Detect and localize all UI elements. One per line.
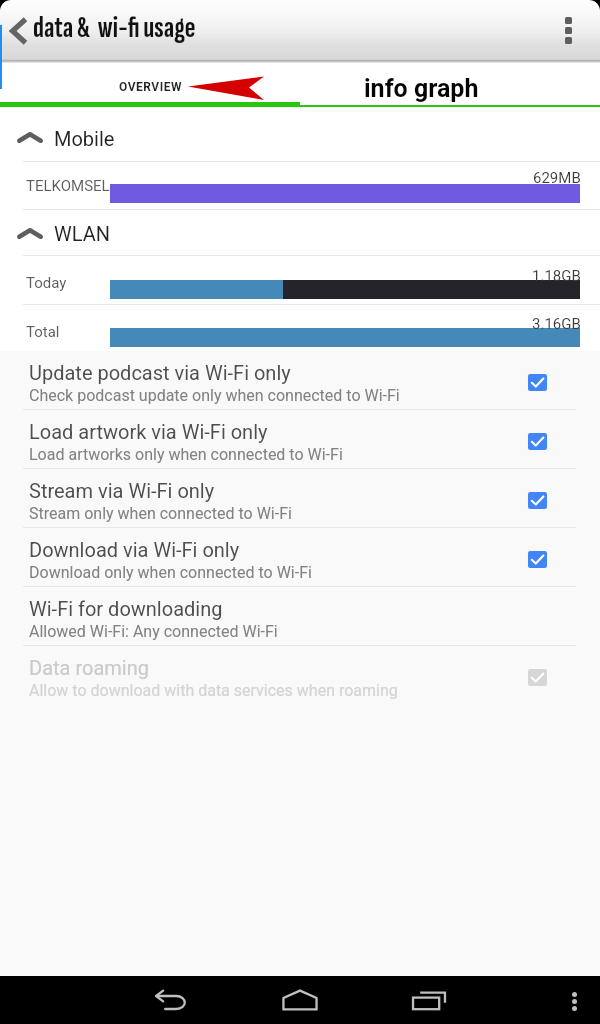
button[interactable]: Update podcast via Wi-Fi only [0,351,600,410]
staticText: Allow to download with data services whe… [29,681,398,700]
button[interactable]: Mobile [0,107,600,161]
staticText: Stream only when connected to Wi-Fi [29,504,292,523]
button[interactable]: OVERVIEW [0,63,300,107]
button[interactable]: Recent apps [399,976,459,1024]
staticText: 3.16GB [532,315,581,333]
button[interactable]: Download via Wi-Fi only [0,528,600,587]
staticText: Today [26,274,67,292]
button[interactable]: TELKOMSEL [0,162,600,209]
button[interactable]: Update podcast via Wi-Fi only [518,363,556,401]
staticText: Data roaming [29,656,149,679]
button[interactable]: Load artwork via Wi-Fi only [0,410,600,469]
button[interactable]: info graph [300,63,600,107]
staticText: OVERVIEW [119,80,182,94]
button[interactable]: Data roaming [0,646,600,705]
button[interactable]: Home [270,976,330,1024]
button[interactable]: More options [553,977,595,1024]
staticText: 1.18GB [532,267,581,285]
staticText: WLAN [54,222,111,245]
button[interactable]: Back [3,5,35,57]
staticText: Load artworks only when connected to Wi-… [29,445,343,464]
button[interactable]: Total [0,305,600,354]
button[interactable]: Load artwork via Wi-Fi only [518,422,556,460]
staticText: Mobile [54,127,115,150]
staticText: Total [26,323,60,341]
staticText: Load artwork via Wi-Fi only [29,420,268,443]
button[interactable]: Data roaming [518,658,556,696]
staticText: TELKOMSEL [26,177,110,195]
button[interactable]: Stream via Wi-Fi only [518,481,556,519]
button[interactable]: Back [142,976,202,1024]
button[interactable]: Wi-Fi for downloading [0,587,600,646]
button[interactable]: WLAN [0,210,600,255]
staticText: Download only when connected to Wi-Fi [29,563,312,582]
button[interactable]: Today [0,256,600,304]
button[interactable]: Stream via Wi-Fi only [0,469,600,528]
staticText: Allowed Wi-Fi: Any connected Wi-Fi [29,622,278,641]
staticText: Stream via Wi-Fi only [29,479,215,502]
button[interactable]: Download via Wi-Fi only [518,540,556,578]
staticText: info graph [364,74,479,103]
button[interactable]: More options [549,4,587,56]
staticText: Wi-Fi for downloading [29,597,223,620]
staticText: 629MB [533,169,581,187]
staticText: Download via Wi-Fi only [29,538,240,561]
staticText: data & wi-fi usage [33,10,196,46]
staticText: Check podcast update only when connected… [29,386,400,405]
staticText: Update podcast via Wi-Fi only [29,361,291,384]
